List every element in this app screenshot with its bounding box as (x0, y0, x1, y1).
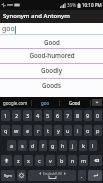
staticText: c (38, 157, 41, 164)
staticText: g (51, 142, 55, 149)
button[interactable]: Shift (1, 155, 12, 166)
button[interactable]: v (46, 155, 55, 166)
staticText: 2 (15, 112, 19, 119)
button[interactable]: Enter (88, 170, 102, 181)
staticText: l (92, 142, 94, 149)
button[interactable]: 2 (12, 110, 21, 121)
staticText: Good (44, 38, 60, 46)
button[interactable]: 5 (44, 110, 52, 121)
button[interactable]: o (84, 125, 92, 136)
button[interactable]: g (49, 140, 57, 151)
button[interactable]: l (89, 140, 97, 151)
button[interactable]: 4 (34, 110, 42, 121)
staticText: goo (41, 100, 50, 106)
button[interactable]: m (79, 155, 88, 166)
staticText: Good-humored (29, 51, 75, 59)
staticText: u (66, 127, 70, 134)
button[interactable]: x (24, 155, 33, 166)
button[interactable]: h (59, 140, 67, 151)
staticText: 9 (86, 112, 90, 119)
button[interactable]: u (64, 125, 72, 136)
staticText: m (81, 157, 87, 164)
button[interactable]: w (12, 125, 21, 136)
button[interactable]: d (29, 140, 37, 151)
staticText: y (57, 127, 60, 134)
staticText: s (21, 142, 24, 149)
staticText: English(US) (43, 171, 62, 176)
button[interactable]: 0 (94, 110, 102, 121)
staticText: d (31, 142, 35, 149)
staticText: 0 (96, 112, 100, 119)
staticText: p (96, 127, 100, 134)
staticText: x (27, 157, 30, 164)
staticText: goo (2, 24, 15, 34)
button[interactable]: goo (0, 23, 103, 35)
button[interactable]: 6 (54, 110, 62, 121)
button[interactable]: 8 (74, 110, 82, 121)
staticText: w (14, 127, 19, 134)
button[interactable]: q (1, 125, 10, 136)
staticText: v (49, 157, 52, 164)
button[interactable]: r (34, 125, 42, 136)
button[interactable]: Good (0, 35, 103, 49)
staticText: o (86, 127, 90, 134)
staticText: q (4, 127, 8, 134)
staticText: h (61, 142, 65, 149)
button[interactable]: f (39, 140, 47, 151)
button[interactable]: Goodly (0, 64, 103, 79)
staticText: Goodly (41, 66, 62, 74)
button[interactable]: i (74, 125, 82, 136)
staticText: Synonym and Antonym (3, 12, 70, 20)
staticText: 10:10 PM (82, 2, 102, 8)
button[interactable]: Goods (0, 79, 103, 97)
staticText: e (26, 127, 30, 134)
staticText: Goods (42, 81, 61, 89)
button[interactable]: j (69, 140, 77, 151)
button[interactable]: p (94, 125, 102, 136)
staticText: 6 (56, 112, 60, 119)
button[interactable]: More suggestions (92, 99, 102, 106)
staticText: a (10, 142, 14, 149)
staticText: t (47, 127, 49, 134)
staticText: b (60, 157, 64, 164)
button[interactable]: goo (32, 97, 59, 108)
staticText: 3 (26, 112, 30, 119)
staticText: z (17, 157, 20, 164)
staticText: r (37, 127, 40, 134)
button[interactable]: Good (60, 97, 90, 108)
button[interactable]: z (14, 155, 22, 166)
button[interactable]: 3 (23, 110, 32, 121)
button[interactable]: c (35, 155, 44, 166)
button[interactable]: 9 (84, 110, 92, 121)
button[interactable]: 1 (1, 110, 10, 121)
button[interactable]: e (23, 125, 32, 136)
button[interactable]: y (54, 125, 62, 136)
staticText: 5 (46, 112, 50, 119)
button[interactable]: s (18, 140, 27, 151)
staticText: 36% (67, 2, 76, 8)
button[interactable]: a (7, 140, 16, 151)
staticText: 8 (76, 112, 80, 119)
button[interactable]: 7 (64, 110, 72, 121)
staticText: n (71, 157, 75, 164)
staticText: 1 (4, 112, 8, 119)
button[interactable]: t (44, 125, 52, 136)
staticText: google.com (3, 100, 28, 106)
staticText: 4 (36, 112, 40, 119)
button[interactable]: English(US) (28, 170, 76, 181)
button[interactable]: Settings (17, 170, 26, 181)
staticText: f (42, 142, 44, 149)
button[interactable]: k (79, 140, 87, 151)
button[interactable]: Sym (1, 170, 15, 181)
staticText: k (82, 142, 85, 149)
button[interactable]: Synonym and Antonym (0, 10, 103, 23)
button[interactable]: google.com (0, 97, 31, 108)
staticText: . (81, 172, 83, 179)
staticText: 7 (66, 112, 70, 119)
button[interactable]: n (68, 155, 77, 166)
staticText: j (72, 142, 74, 149)
button[interactable]: . (78, 170, 86, 181)
button[interactable]: b (57, 155, 66, 166)
button[interactable]: Good-humored (0, 49, 103, 64)
button[interactable]: Delete (90, 155, 102, 166)
